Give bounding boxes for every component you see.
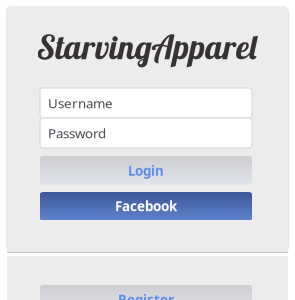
staticText: Password <box>48 124 106 142</box>
staticText: StarvingApparel <box>36 26 256 68</box>
staticText: Register <box>118 291 174 300</box>
button[interactable]: Facebook <box>40 192 252 220</box>
staticText: Login <box>128 162 164 179</box>
staticText: Username <box>48 94 113 112</box>
button[interactable]: Register <box>40 285 252 300</box>
button[interactable]: Login <box>40 156 252 185</box>
staticText: Facebook <box>115 197 177 215</box>
